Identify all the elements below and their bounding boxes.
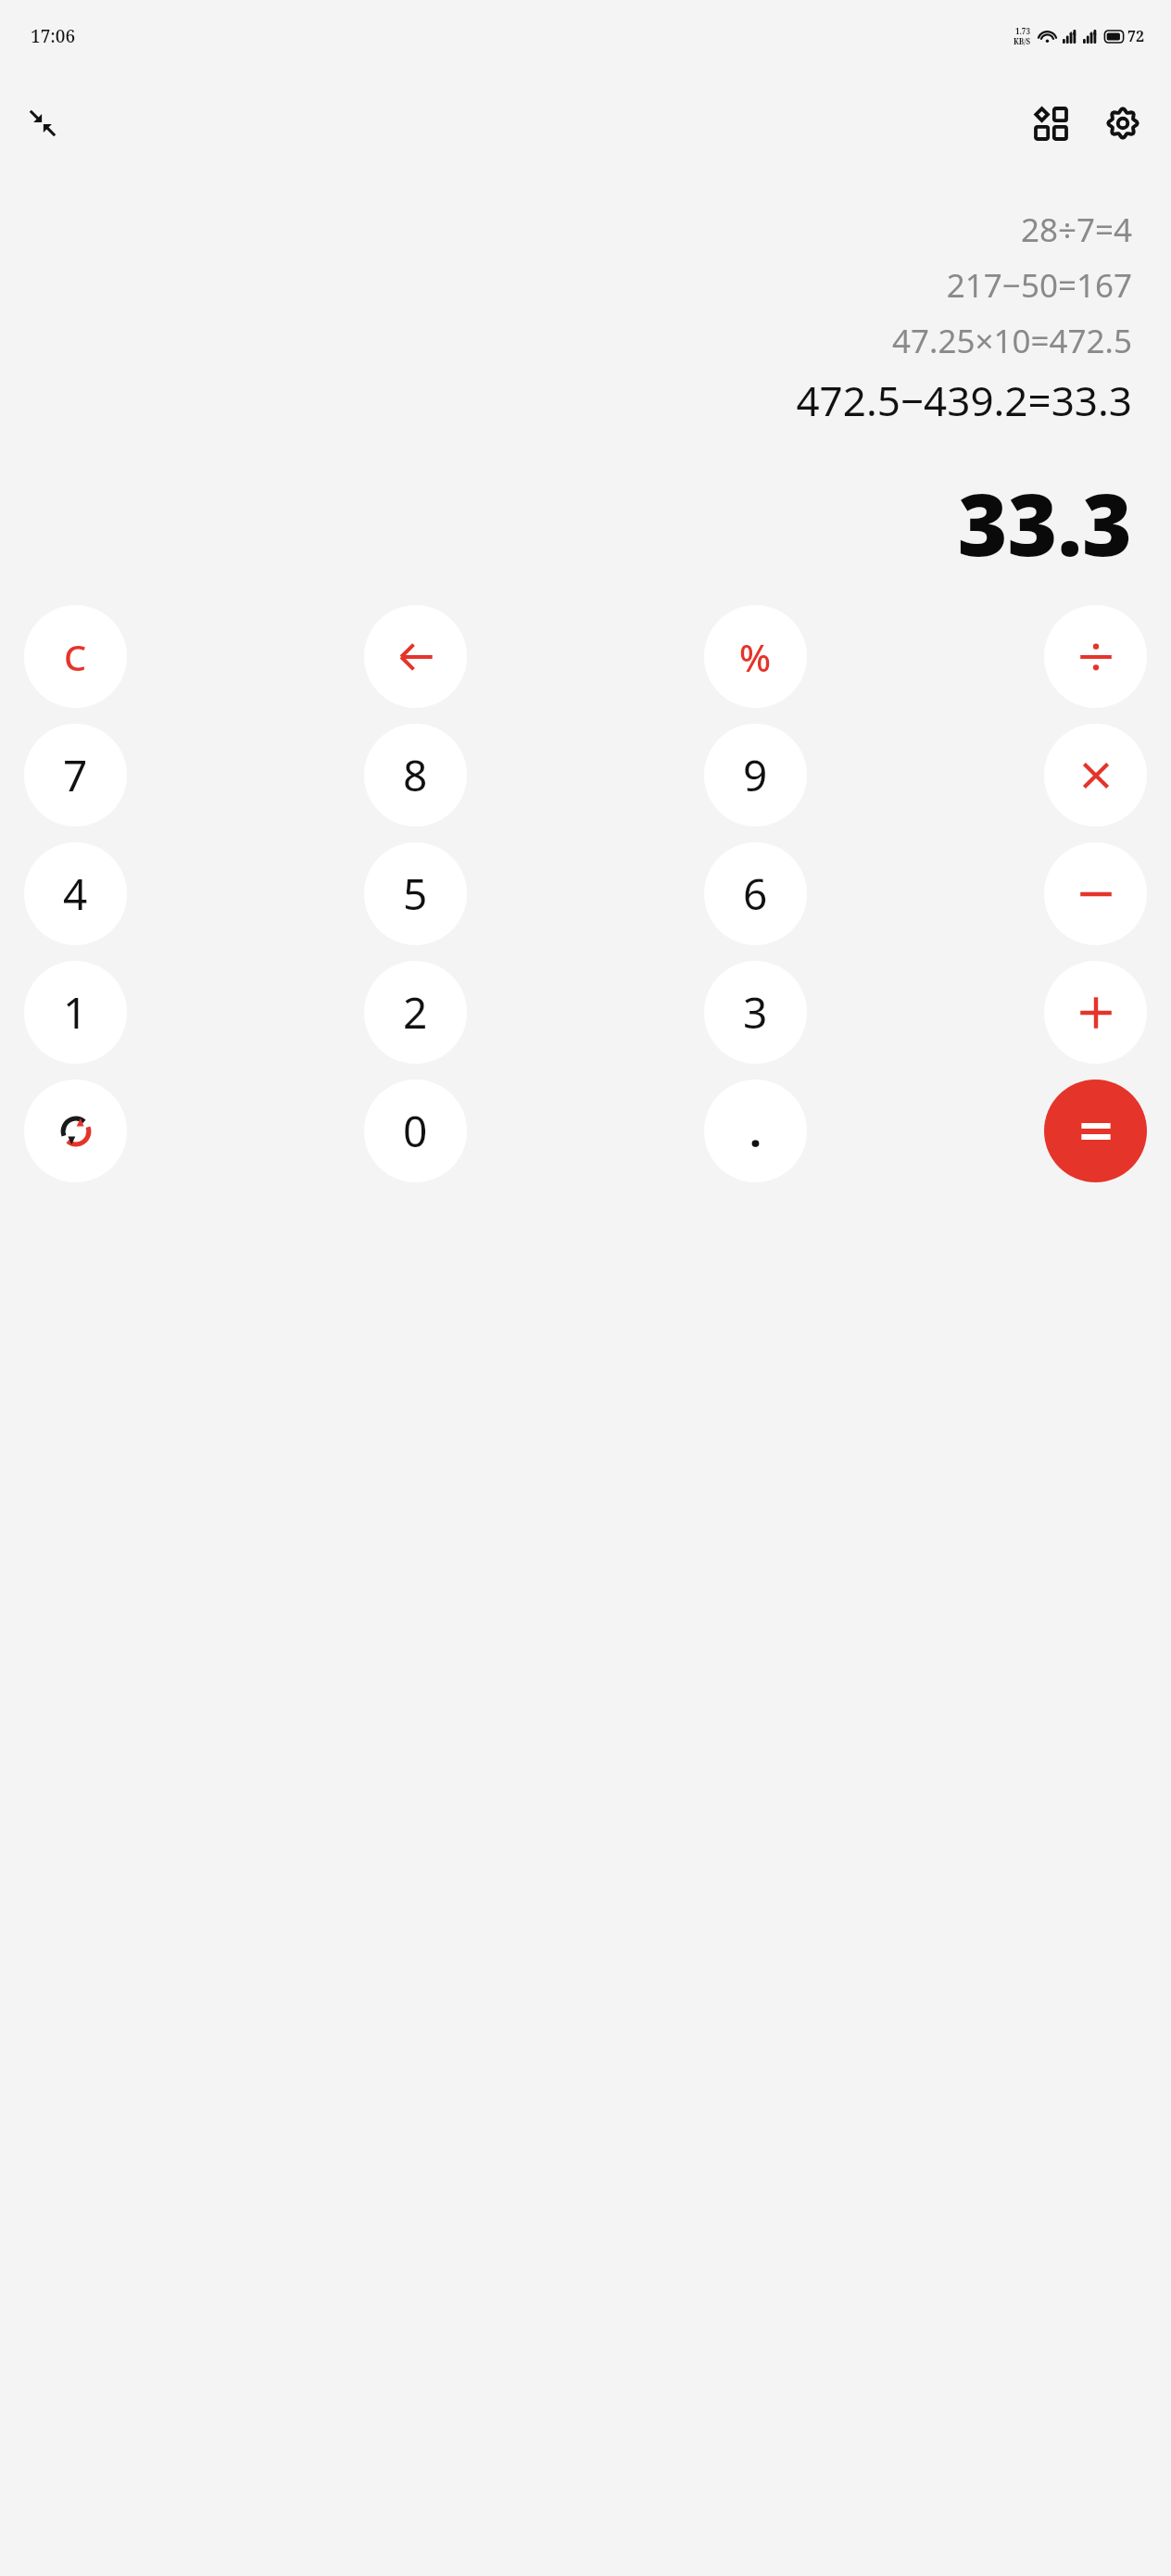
staticText: 28÷7=4 (1020, 208, 1132, 252)
staticText: 8 (403, 746, 428, 804)
staticText: 17:06 (31, 24, 76, 48)
button[interactable]: Equals (1044, 1080, 1147, 1182)
button[interactable]: Collapse (13, 94, 72, 153)
button[interactable]: 7 (24, 724, 127, 827)
staticText: % (739, 632, 772, 682)
button[interactable]: 4 (24, 842, 127, 945)
staticText: 7 (63, 746, 88, 804)
staticText: 72 (1127, 26, 1145, 46)
button[interactable]: 1 (24, 961, 127, 1064)
button[interactable]: Converter (24, 1080, 127, 1182)
staticText: 4 (63, 865, 88, 923)
staticText: 217−50=167 (946, 263, 1132, 308)
button[interactable]: 0 (364, 1080, 467, 1182)
button[interactable]: 9 (704, 724, 807, 827)
button[interactable]: Settings (1091, 92, 1154, 155)
staticText: KB/S (1014, 36, 1031, 46)
button[interactable]: C (24, 605, 127, 708)
button[interactable]: Modes (1019, 92, 1082, 155)
button[interactable]: Backspace (364, 605, 467, 708)
staticText: 6 (743, 865, 768, 923)
staticText: 33.3 (957, 465, 1132, 581)
button[interactable]: 5 (364, 842, 467, 945)
staticText: 4G (1089, 30, 1097, 37)
staticText: 1.73 (1015, 26, 1030, 36)
staticText: . (749, 1102, 762, 1160)
staticText: 0 (403, 1102, 428, 1160)
staticText: 9 (743, 746, 768, 804)
button[interactable]: Add (1044, 961, 1147, 1064)
button[interactable]: % (704, 605, 807, 708)
staticText: C (64, 633, 87, 681)
button[interactable]: 3 (704, 961, 807, 1064)
button[interactable]: Subtract (1044, 842, 1147, 945)
staticText: 2 (403, 983, 428, 1042)
button[interactable]: 6 (704, 842, 807, 945)
button[interactable]: Divide (1044, 605, 1147, 708)
button[interactable]: Multiply (1044, 724, 1147, 827)
staticText: 5 (403, 865, 428, 923)
staticText: 1 (63, 983, 88, 1042)
staticText: 47.25×10=472.5 (891, 319, 1132, 363)
button[interactable]: 2 (364, 961, 467, 1064)
button[interactable]: . (704, 1080, 807, 1182)
button[interactable]: 8 (364, 724, 467, 827)
staticText: 472.5−439.2=33.3 (796, 373, 1132, 428)
staticText: 4G (1069, 30, 1077, 37)
staticText: 3 (743, 983, 768, 1042)
